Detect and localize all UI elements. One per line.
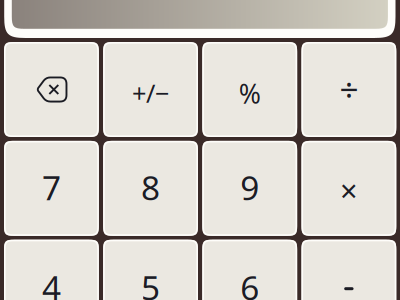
staticText: 6	[240, 265, 259, 300]
staticText: %	[239, 76, 261, 111]
button[interactable]: %	[202, 42, 297, 137]
staticText: +/−	[132, 76, 169, 110]
staticText: ÷	[339, 67, 358, 111]
button[interactable]: ÷	[301, 42, 396, 137]
staticText: 5	[141, 265, 160, 300]
button[interactable]: 9	[202, 141, 297, 236]
button[interactable]	[301, 240, 396, 300]
staticText: 4	[42, 265, 61, 300]
staticText: 7	[42, 165, 61, 209]
staticText: ×	[340, 170, 358, 211]
button[interactable]: 4	[4, 240, 99, 300]
button[interactable]: +/−	[103, 42, 198, 137]
button[interactable]: 6	[202, 240, 297, 300]
button[interactable]: 8	[103, 141, 198, 236]
button[interactable]: 7	[4, 141, 99, 236]
button[interactable]: ×	[301, 141, 396, 236]
button[interactable]: 5	[103, 240, 198, 300]
button[interactable]	[4, 42, 99, 137]
staticText: 9	[240, 165, 259, 209]
staticText: 8	[141, 165, 160, 209]
